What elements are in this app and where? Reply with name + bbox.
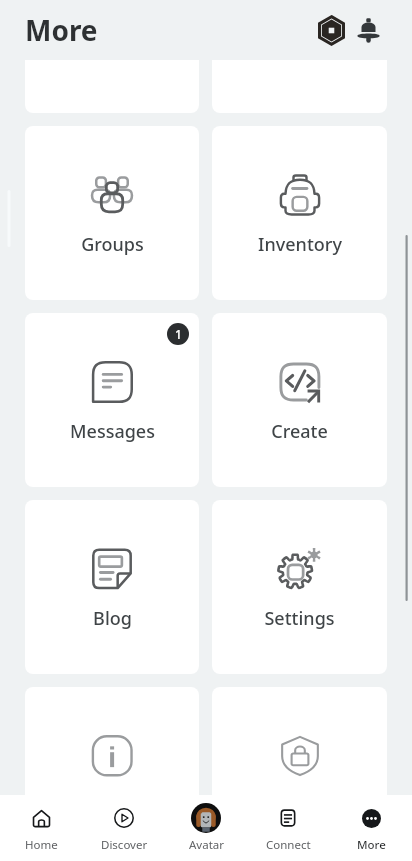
staticText: Home: [25, 837, 58, 853]
staticText: Messages: [70, 419, 155, 444]
staticText: Settings: [264, 606, 335, 631]
button[interactable]: More: [330, 795, 412, 861]
staticText: Avatar: [189, 837, 224, 853]
button[interactable]: Avatar: [165, 795, 247, 861]
button[interactable]: Blog: [25, 500, 199, 674]
button[interactable]: Notifications: [350, 12, 387, 49]
staticText: 1: [175, 326, 182, 342]
staticText: Connect: [266, 837, 311, 853]
button[interactable]: Home: [0, 795, 82, 861]
staticText: Groups: [81, 232, 144, 257]
button[interactable]: Roblox: [313, 12, 350, 49]
button[interactable]: Groups: [25, 126, 199, 300]
staticText: Blog: [93, 606, 132, 631]
staticText: Create: [271, 419, 328, 444]
button[interactable]: Settings: [212, 500, 387, 674]
staticText: Inventory: [258, 232, 342, 257]
button[interactable]: Messages: [25, 313, 199, 487]
button[interactable]: Inventory: [212, 126, 387, 300]
button[interactable]: Connect: [247, 795, 329, 861]
staticText: More: [357, 837, 386, 853]
button[interactable]: Discover: [83, 795, 165, 861]
staticText: Discover: [101, 837, 148, 853]
button[interactable]: Create: [212, 313, 387, 487]
button[interactable]: About: [25, 687, 199, 795]
button[interactable]: Privacy: [212, 687, 387, 795]
staticText: More: [25, 11, 98, 49]
